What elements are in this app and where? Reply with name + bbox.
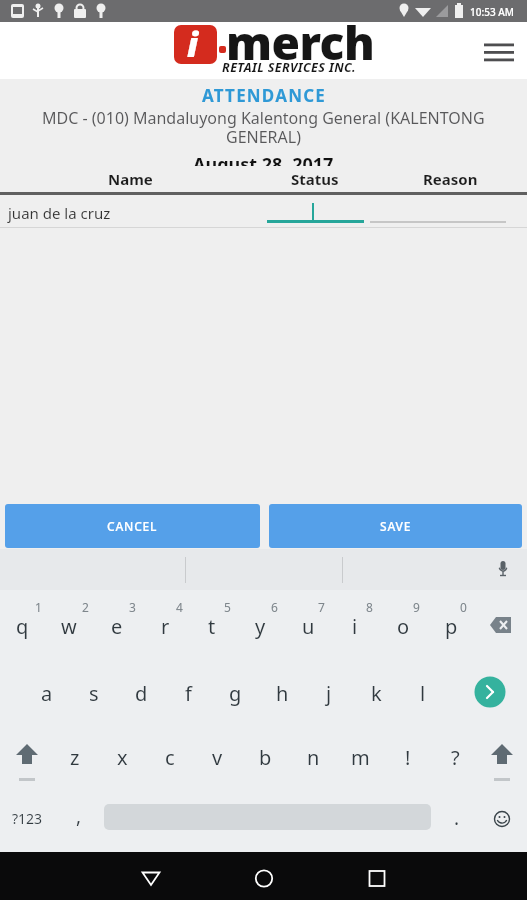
staticText: ATTENDANCE	[202, 84, 326, 107]
button[interactable]: r	[142, 609, 188, 643]
staticText: a	[41, 680, 53, 707]
button[interactable]	[470, 554, 520, 586]
staticText: 5	[224, 599, 231, 615]
button[interactable]: h	[259, 676, 305, 710]
staticText: 4	[176, 599, 183, 615]
button[interactable]: f	[165, 676, 211, 710]
staticText: i	[187, 21, 199, 67]
button[interactable]: s	[71, 676, 117, 710]
button[interactable]: i	[332, 609, 378, 643]
staticText: Reason	[423, 169, 478, 189]
staticText: 6	[271, 599, 278, 615]
staticText: juan de la cruz	[8, 203, 111, 223]
staticText: Status	[291, 169, 339, 189]
staticText: x	[117, 744, 128, 771]
staticText: k	[371, 680, 382, 707]
button[interactable]	[357, 856, 397, 896]
button[interactable]: c	[147, 740, 193, 774]
staticText: SAVE	[380, 518, 412, 534]
button[interactable]: n	[290, 740, 336, 774]
staticText: GENERAL)	[226, 126, 301, 148]
button[interactable]: g	[212, 676, 258, 710]
button[interactable]: p	[428, 609, 474, 643]
staticText: !	[405, 744, 411, 771]
staticText: ?	[451, 744, 460, 771]
button[interactable]: t	[189, 609, 235, 643]
button[interactable]: k	[353, 676, 399, 710]
button[interactable]: CANCEL	[5, 504, 260, 548]
staticText: s	[89, 680, 99, 707]
staticText: 9	[413, 599, 420, 615]
button[interactable]: e	[94, 609, 140, 643]
button[interactable]: j	[306, 676, 352, 710]
staticText: Name	[108, 169, 153, 189]
button[interactable]: l	[400, 676, 446, 710]
button[interactable]	[131, 856, 171, 896]
staticText: o	[397, 613, 410, 640]
staticText: l	[420, 680, 426, 707]
staticText: n	[307, 744, 320, 771]
button[interactable]: d	[118, 676, 164, 710]
staticText: 7	[318, 599, 325, 615]
button[interactable]: v	[194, 740, 240, 774]
staticText: d	[135, 680, 148, 707]
staticText: v	[212, 744, 223, 771]
staticText: i	[352, 613, 358, 640]
staticText: RETAIL SERVICES INC.	[222, 59, 357, 76]
button[interactable]: z	[52, 740, 98, 774]
staticText: h	[276, 680, 289, 707]
staticText: m	[351, 744, 370, 771]
staticText: 1	[35, 599, 42, 615]
button[interactable]	[480, 40, 516, 64]
staticText: r	[161, 613, 170, 640]
button[interactable]: b	[242, 740, 288, 774]
staticText: j	[326, 680, 332, 707]
staticText: MDC - (010) Mandaluyong Kalentong Genera…	[42, 107, 485, 129]
staticText: e	[111, 613, 123, 640]
button[interactable]: o	[380, 609, 426, 643]
staticText: c	[165, 744, 175, 771]
staticText: 10:53 AM	[470, 5, 514, 19]
button[interactable]: w	[46, 609, 92, 643]
staticText: 2	[82, 599, 89, 615]
button[interactable]: m	[337, 740, 383, 774]
staticText: merch	[226, 11, 375, 68]
button[interactable]: ?123	[4, 801, 50, 835]
button[interactable]: SAVE	[269, 504, 522, 548]
button[interactable]: u	[285, 609, 331, 643]
staticText: g	[229, 680, 242, 707]
button[interactable]: q	[0, 609, 45, 643]
staticText: w	[61, 613, 77, 640]
button[interactable]: y	[237, 609, 283, 643]
staticText: .	[454, 805, 460, 831]
staticText: u	[302, 613, 315, 640]
staticText: t	[208, 613, 216, 640]
button[interactable]: a	[24, 676, 70, 710]
button[interactable]	[470, 675, 510, 705]
staticText: ?123	[12, 809, 43, 828]
staticText: b	[259, 744, 272, 771]
button[interactable]	[244, 856, 284, 896]
staticText: 0	[460, 599, 467, 615]
staticText: August 28, 2017	[193, 152, 334, 177]
staticText: ,	[76, 803, 82, 829]
button[interactable]	[480, 610, 520, 640]
button[interactable]: ?	[432, 740, 478, 774]
staticText: CANCEL	[107, 518, 158, 534]
staticText: 8	[366, 599, 373, 615]
staticText: y	[255, 613, 266, 640]
staticText: 3	[129, 599, 136, 615]
staticText: p	[445, 613, 458, 640]
button[interactable]: .	[434, 801, 480, 835]
button[interactable]: x	[99, 740, 145, 774]
staticText: f	[185, 680, 192, 707]
staticText: q	[16, 613, 29, 640]
button[interactable]: !	[385, 740, 431, 774]
button[interactable]: ,	[56, 799, 102, 833]
staticText: z	[70, 744, 80, 771]
